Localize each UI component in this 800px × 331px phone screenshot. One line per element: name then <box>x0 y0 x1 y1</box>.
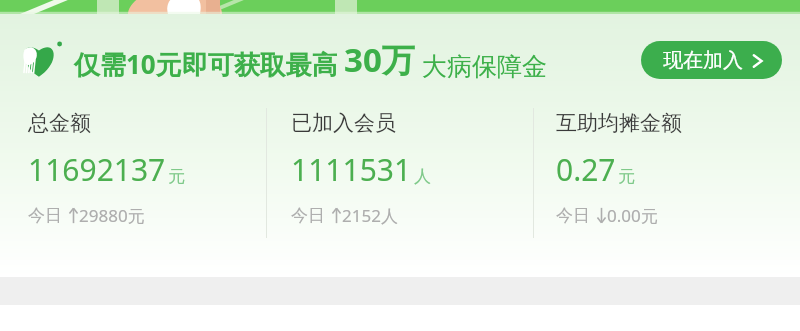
staticText: 今日 <box>291 205 325 226</box>
staticText: 2152人 <box>342 204 398 227</box>
staticText: 元 <box>168 166 185 187</box>
staticText: 1111531 <box>291 149 412 190</box>
staticText: 大病保障金 <box>422 51 547 82</box>
button[interactable]: 总金额 <box>0 108 266 227</box>
staticText: 总金额 <box>28 110 91 136</box>
button[interactable]: 已加入会员 <box>267 108 533 227</box>
staticText: 今日 <box>28 205 62 226</box>
staticText: 0.00元 <box>607 204 658 227</box>
staticText: 互助均摊金额 <box>556 110 682 136</box>
staticText: 人 <box>414 166 431 187</box>
staticText: 今日 <box>556 205 590 226</box>
staticText: 现在加入 <box>663 48 743 73</box>
button[interactable]: 现在加入 <box>641 41 782 79</box>
staticText: 11692137 <box>28 149 166 190</box>
staticText: 30万 <box>344 37 415 82</box>
staticText: 已加入会员 <box>291 110 396 136</box>
staticText: 元 <box>618 166 635 187</box>
staticText: 仅需10元即可获取最高 <box>74 46 338 82</box>
staticText: 29880元 <box>79 204 145 227</box>
staticText: 0.27 <box>556 149 616 190</box>
other: Mutual aid heart logo <box>20 39 64 81</box>
button[interactable]: 互助均摊金额 <box>534 108 800 227</box>
